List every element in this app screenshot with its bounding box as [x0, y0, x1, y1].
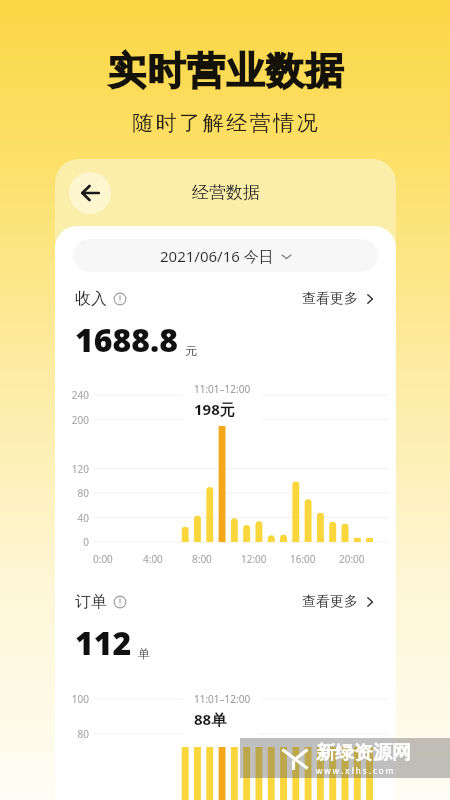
staticText: 200 [57, 413, 89, 427]
button[interactable]: Back [69, 172, 111, 214]
staticText: 查看更多 [302, 290, 358, 308]
staticText: 20:00 [339, 552, 365, 566]
staticText: w w w . x l h s . c o m [316, 765, 394, 776]
staticText: 元 [185, 343, 197, 358]
staticText: 0 [57, 535, 89, 549]
staticText: 40 [57, 511, 89, 525]
staticText: 120 [57, 462, 89, 476]
staticText: 16:00 [290, 552, 316, 566]
staticText: 随时了解经营情况 [131, 110, 319, 136]
button[interactable]: 查看更多 [302, 593, 376, 611]
staticText: 240 [57, 388, 89, 402]
staticText: 198元 [194, 399, 235, 419]
staticText: 11:01–12:00 [194, 692, 251, 706]
staticText: 经营数据 [192, 182, 260, 203]
staticText: 88单 [194, 709, 227, 729]
staticText: 4:00 [143, 552, 163, 566]
staticText: 80 [59, 727, 89, 741]
staticText: 收入 [75, 289, 107, 309]
button[interactable]: 2021/06/16 今日 [73, 239, 378, 272]
staticText: 实时营业数据 [107, 47, 344, 95]
button[interactable]: 查看更多 [302, 290, 376, 308]
staticText: 2021/06/16 今日 [160, 246, 274, 266]
staticText: 112 [75, 621, 132, 665]
staticText: 单 [138, 646, 150, 661]
staticText: 订单 [75, 592, 107, 612]
staticText: 100 [59, 692, 89, 706]
staticText: 0:00 [93, 552, 113, 566]
staticText: 80 [57, 486, 89, 500]
staticText: 12:00 [241, 552, 267, 566]
staticText: 查看更多 [302, 593, 358, 611]
staticText: 11:01–12:00 [194, 382, 251, 396]
staticText: 1688.8 [75, 318, 179, 362]
staticText: 新绿资源网 [316, 741, 411, 765]
staticText: 8:00 [192, 552, 212, 566]
